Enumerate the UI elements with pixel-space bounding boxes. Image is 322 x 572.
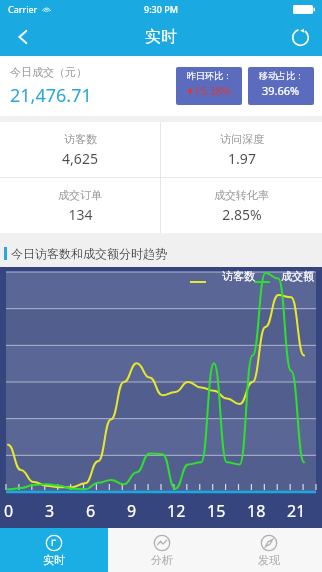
button[interactable]: 成交转化率 (161, 178, 322, 233)
staticText: 3 (45, 500, 55, 522)
staticText: 成交订单 (58, 188, 102, 202)
staticText: 昨日环比： (187, 70, 232, 81)
staticText: 成交额 (281, 269, 314, 283)
staticText: 21 (287, 500, 306, 522)
staticText: 2.85% (222, 205, 262, 224)
button[interactable]: Refresh (278, 18, 322, 56)
button[interactable]: 访问深度 (161, 122, 322, 177)
staticText: 成交转化率 (214, 188, 269, 202)
staticText: 发现 (258, 553, 280, 567)
staticText: 4,625 (62, 149, 98, 168)
staticText: 15.38% (194, 83, 232, 98)
staticText: 今日成交（元） (10, 65, 87, 79)
staticText: 分析 (151, 553, 173, 567)
button[interactable]: 昨日环比： (176, 67, 242, 105)
button[interactable]: 实时 (0, 528, 108, 572)
staticText: 6 (86, 500, 96, 522)
staticText: 访客数 (222, 269, 255, 283)
staticText: 实时 (43, 553, 65, 567)
staticText: 访客数 (64, 132, 97, 146)
button[interactable]: 成交订单 (0, 178, 160, 233)
staticText: 18 (247, 500, 266, 522)
staticText: 0 (4, 500, 14, 522)
staticText: 访问深度 (220, 132, 264, 146)
staticText: 134 (68, 205, 93, 224)
staticText: 21,476.71 (10, 83, 92, 108)
staticText: 移动占比： (259, 70, 304, 81)
staticText: Carrier (8, 3, 38, 15)
button[interactable]: 移动占比： (248, 67, 314, 105)
staticText: 9 (127, 500, 137, 522)
staticText: 39.66% (262, 83, 300, 98)
button[interactable]: 访客数 (0, 122, 160, 177)
button[interactable]: 发现 (215, 528, 322, 572)
staticText: 今日访客数和成交额分时趋势 (11, 246, 167, 261)
staticText: 实时 (145, 27, 177, 47)
staticText: 9:30 PM (144, 3, 178, 15)
staticText: 12 (167, 500, 186, 522)
button[interactable]: Back (0, 18, 46, 56)
staticText: 15 (207, 500, 226, 522)
staticText: 1.97 (228, 149, 256, 168)
button[interactable]: 分析 (108, 528, 215, 572)
